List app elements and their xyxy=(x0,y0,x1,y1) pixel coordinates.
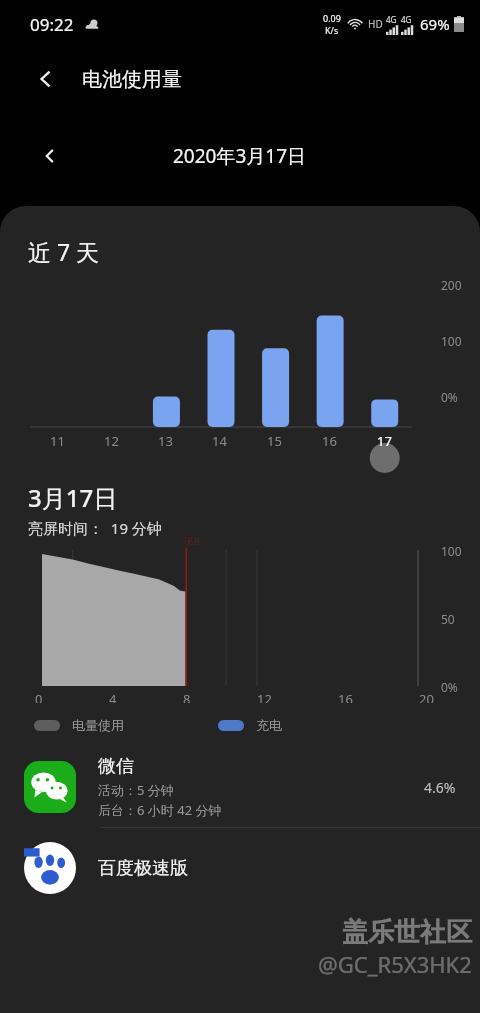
staticText: 4.6% xyxy=(424,778,456,797)
staticText: 20 xyxy=(419,690,434,703)
staticText: 0% xyxy=(441,679,458,695)
staticText: HD xyxy=(368,17,383,31)
staticText: 现在 xyxy=(184,535,202,546)
staticText: 微信 xyxy=(98,755,134,778)
staticText: 盖乐世社区 xyxy=(342,916,472,949)
staticText: 200 xyxy=(441,277,462,293)
staticText: 8 xyxy=(183,690,191,703)
staticText: 09:22 xyxy=(30,13,74,36)
staticText: 活动：5 分钟 xyxy=(98,781,174,799)
staticText: 百度极速版 xyxy=(98,857,188,880)
staticText: 后台：6 小时 42 分钟 xyxy=(98,801,222,819)
button[interactable]: Previous day xyxy=(30,136,70,176)
staticText: 11 xyxy=(50,432,65,450)
staticText: 2020年3月17日 xyxy=(173,143,307,169)
staticText: 充电 xyxy=(256,717,282,733)
staticText: 电池使用量 xyxy=(82,67,182,92)
staticText: 100 xyxy=(441,543,462,559)
staticText: 50 xyxy=(441,611,455,627)
staticText: 12 xyxy=(257,690,272,703)
button[interactable]: 百度极速版 xyxy=(0,828,480,908)
staticText: 0 xyxy=(35,690,43,703)
staticText: 亮屏时间： 19 分钟 xyxy=(28,518,162,538)
staticText: 4G xyxy=(401,14,412,25)
button[interactable]: Back xyxy=(24,57,68,101)
staticText: 0.09 xyxy=(323,12,341,24)
staticText: 0% xyxy=(441,389,458,405)
staticText: 3月17日 xyxy=(28,481,118,514)
staticText: 近 7 天 xyxy=(28,236,100,267)
staticText: 15 xyxy=(267,432,282,450)
staticText: 17 xyxy=(377,432,392,450)
staticText: 12 xyxy=(104,432,119,450)
staticText: @GC_R5X3HK2 xyxy=(318,949,472,979)
staticText: 13 xyxy=(158,432,173,450)
staticText: 16 xyxy=(338,690,353,703)
staticText: 69% xyxy=(420,14,450,34)
staticText: 电量使用 xyxy=(72,717,124,733)
staticText: 16 xyxy=(322,432,337,450)
staticText: 100 xyxy=(441,333,462,349)
staticText: 14 xyxy=(212,432,227,450)
button[interactable]: 微信 xyxy=(0,747,480,827)
staticText: 4 xyxy=(109,690,117,703)
staticText: K/s xyxy=(325,24,339,36)
staticText: 4G xyxy=(386,14,397,25)
